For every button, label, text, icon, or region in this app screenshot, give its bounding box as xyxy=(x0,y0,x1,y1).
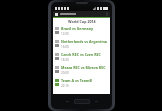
button[interactable]: Czech REC vs Czen REC xyxy=(53,50,110,63)
staticText: 22:15 xyxy=(61,84,69,88)
staticText: Team A vs TeamB xyxy=(61,78,92,83)
staticText: 20:00 xyxy=(61,71,69,75)
button[interactable]: Mezza REC vs Mirava REC xyxy=(53,63,110,76)
staticText: 12:00 xyxy=(61,32,69,36)
staticText: Mezza REC vs Mirava REC xyxy=(61,65,106,70)
button[interactable]: Brazil vs Germany xyxy=(53,24,110,37)
staticText: World Cup 2014 xyxy=(68,19,96,24)
button[interactable]: Netherlands vs Argentina xyxy=(53,37,110,50)
staticText: 16:00 xyxy=(61,45,69,49)
staticText: 18:30 xyxy=(61,58,69,62)
staticText: Czech REC vs Czen REC xyxy=(61,52,101,57)
button[interactable]: Home xyxy=(74,99,90,104)
staticText: Netherlands vs Argentina xyxy=(61,39,108,44)
button[interactable]: Team A vs TeamB xyxy=(53,76,110,89)
button[interactable]: More options xyxy=(106,12,108,16)
staticText: Brazil vs Germany xyxy=(61,26,94,31)
